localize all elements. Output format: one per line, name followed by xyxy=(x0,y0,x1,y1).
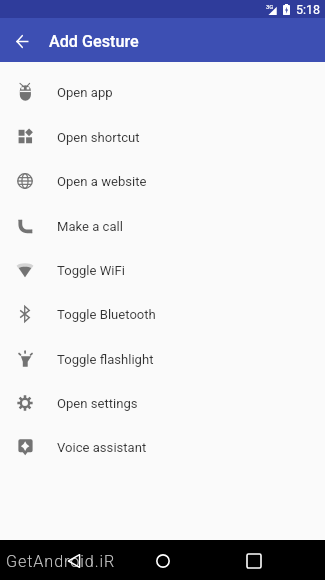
button[interactable]: Toggle Bluetooth xyxy=(0,292,325,336)
button[interactable]: Voice assistant xyxy=(0,425,325,469)
staticText: Open shortcut xyxy=(57,130,140,145)
staticText: Open settings xyxy=(57,396,138,411)
staticText: Make a call xyxy=(57,219,123,234)
button[interactable]: Make a call xyxy=(0,204,325,248)
staticText: Add Gesture xyxy=(49,32,139,51)
button[interactable]: Open app xyxy=(0,70,325,114)
staticText: GetAndroid.iR xyxy=(6,552,116,571)
staticText: Toggle WiFi xyxy=(57,263,125,278)
button[interactable]: Toggle WiFi xyxy=(0,248,325,292)
staticText: Voice assistant xyxy=(57,440,147,455)
button[interactable]: Home xyxy=(143,541,183,580)
staticText: Toggle Bluetooth xyxy=(57,307,156,322)
button[interactable]: Open settings xyxy=(0,381,325,425)
staticText: 5:18 xyxy=(296,2,321,17)
button[interactable]: Open shortcut xyxy=(0,115,325,159)
staticText: Toggle flashlight xyxy=(57,352,154,367)
staticText: 3G xyxy=(266,3,274,10)
button[interactable]: Recent apps xyxy=(234,541,274,580)
button[interactable]: Back xyxy=(54,541,94,580)
button[interactable]: Back xyxy=(0,18,45,62)
staticText: Open app xyxy=(57,85,113,100)
button[interactable]: Open a website xyxy=(0,159,325,203)
staticText: Open a website xyxy=(57,174,147,189)
button[interactable]: Toggle flashlight xyxy=(0,337,325,381)
